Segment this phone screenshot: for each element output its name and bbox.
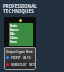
staticText: Farm <box>10 40 17 44</box>
staticText: Claim <box>10 36 18 40</box>
staticText: PROFIT <box>11 56 21 60</box>
staticText: TECHNIQUES <box>3 8 35 14</box>
staticText: 98716 <box>29 63 36 67</box>
button[interactable]: Stake <box>4 17 36 47</box>
staticText: BURN DUST <box>11 63 27 67</box>
staticText: PROFESSIONAL <box>3 3 37 9</box>
button[interactable]: Unique Crypto Plant <box>4 47 36 70</box>
staticText: 48.1% <box>23 56 31 60</box>
button[interactable]: PROFIT <box>4 55 36 60</box>
staticText: Unique Crypto Plant <box>6 50 33 54</box>
staticText: Win <box>10 32 16 36</box>
staticText: Bonus <box>10 28 19 32</box>
staticText: Stake <box>10 24 18 28</box>
button[interactable]: BURN DUST <box>4 62 36 67</box>
